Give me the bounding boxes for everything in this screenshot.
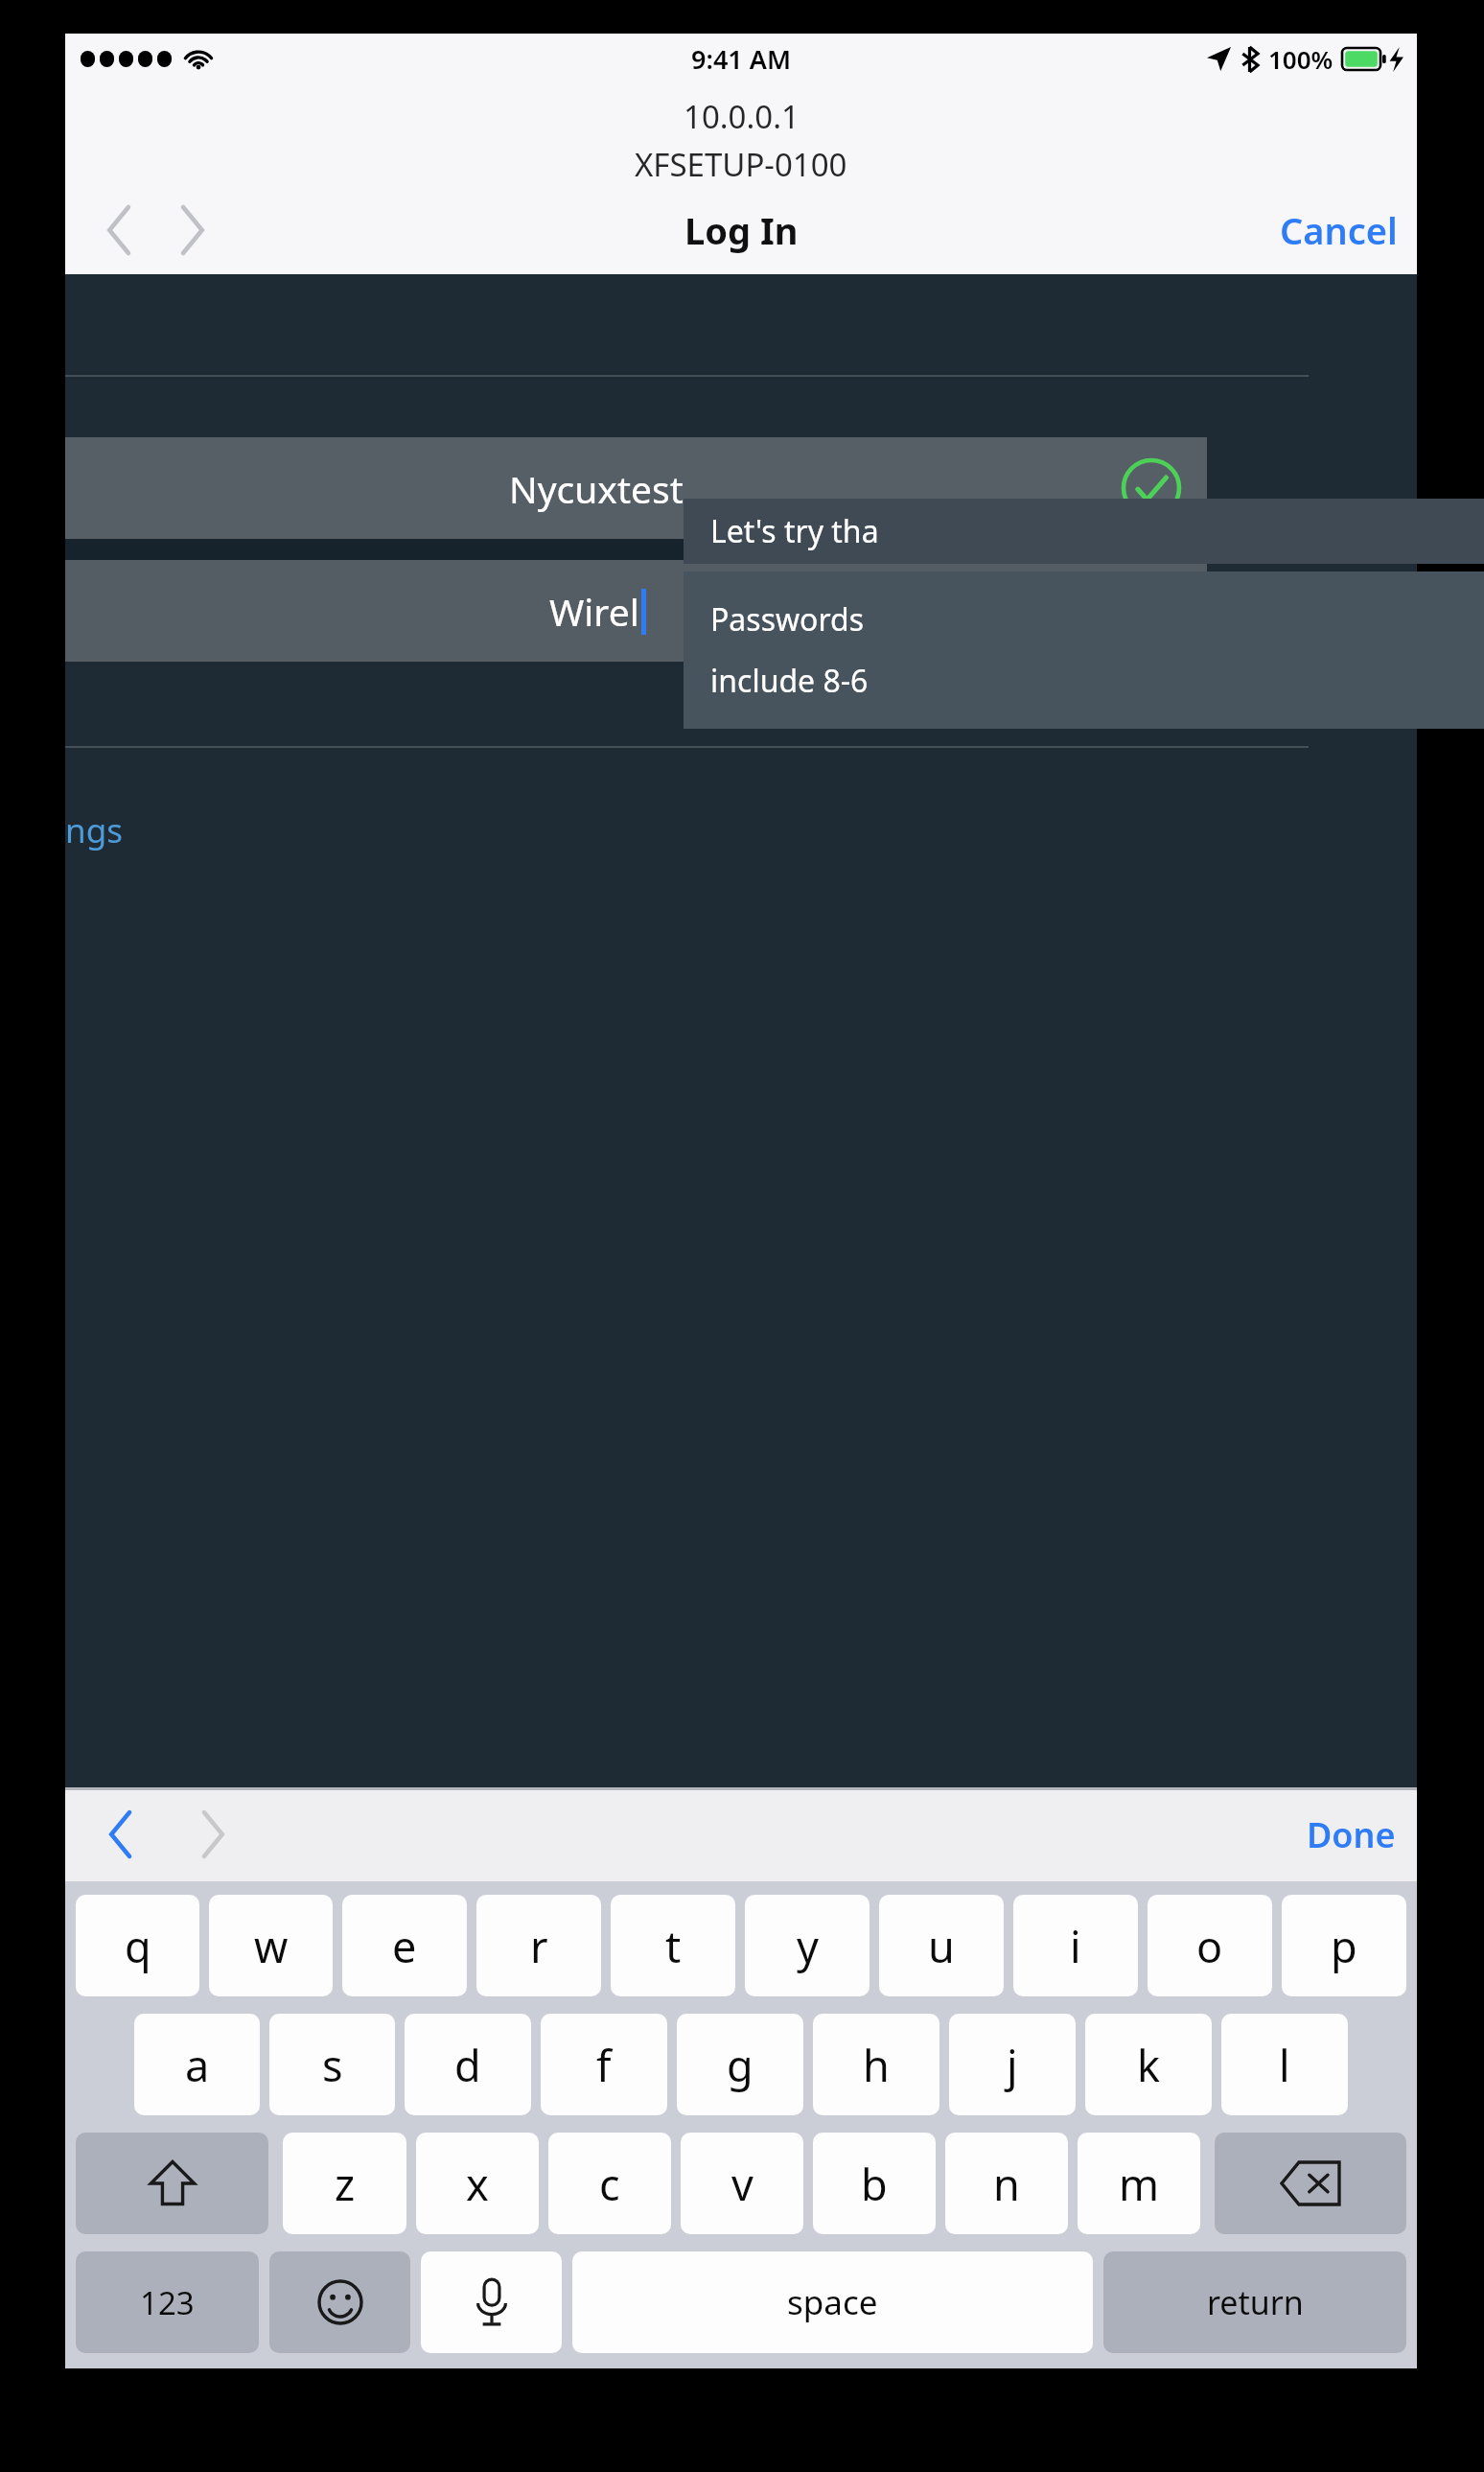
- button[interactable]: b: [813, 2133, 936, 2234]
- staticText: Cancel: [1280, 205, 1398, 255]
- staticText: w: [254, 1917, 289, 1975]
- button[interactable]: y: [745, 1895, 870, 1996]
- button[interactable]: Shift: [76, 2133, 268, 2234]
- button[interactable]: Emoji: [269, 2251, 410, 2353]
- button[interactable]: u: [879, 1895, 1004, 1996]
- button[interactable]: k: [1085, 2014, 1212, 2115]
- button[interactable]: Wirel: [65, 560, 1207, 662]
- staticText: f: [596, 2036, 612, 2094]
- button[interactable]: v: [681, 2133, 803, 2234]
- staticText: y: [797, 1917, 819, 1975]
- button[interactable]: Next field: [176, 1798, 249, 1871]
- staticText: 10.0.0.1: [684, 95, 800, 138]
- button[interactable]: o: [1148, 1895, 1272, 1996]
- staticText: ngs: [65, 807, 123, 853]
- staticText: q: [125, 1917, 151, 1975]
- button[interactable]: d: [405, 2014, 531, 2115]
- staticText: include 8-6: [710, 660, 869, 702]
- staticText: k: [1137, 2036, 1161, 2094]
- button[interactable]: a: [134, 2014, 260, 2115]
- button[interactable]: Numbers: [76, 2251, 259, 2353]
- button[interactable]: h: [813, 2014, 939, 2115]
- staticText: o: [1196, 1917, 1223, 1975]
- staticText: g: [727, 2036, 754, 2094]
- button[interactable]: Dictation: [421, 2251, 562, 2353]
- staticText: 123: [140, 2281, 195, 2324]
- button[interactable]: j: [949, 2014, 1076, 2115]
- button[interactable]: m: [1078, 2133, 1200, 2234]
- staticText: r: [530, 1917, 548, 1975]
- button[interactable]: Previous field: [84, 1798, 157, 1871]
- button[interactable]: Back: [82, 194, 155, 267]
- button[interactable]: r: [476, 1895, 601, 1996]
- button[interactable]: t: [611, 1895, 735, 1996]
- staticText: Wirel: [549, 586, 639, 637]
- staticText: i: [1070, 1917, 1081, 1975]
- staticText: b: [861, 2155, 888, 2213]
- staticText: n: [993, 2155, 1020, 2213]
- button[interactable]: Forward: [155, 194, 228, 267]
- staticText: x: [466, 2155, 489, 2213]
- staticText: space: [787, 2279, 878, 2325]
- staticText: e: [392, 1917, 417, 1975]
- button[interactable]: return: [1103, 2251, 1406, 2353]
- staticText: m: [1119, 2155, 1160, 2213]
- staticText: p: [1331, 1917, 1357, 1975]
- button[interactable]: n: [945, 2133, 1068, 2234]
- button[interactable]: g: [677, 2014, 803, 2115]
- staticText: c: [599, 2155, 620, 2213]
- button[interactable]: l: [1221, 2014, 1348, 2115]
- button[interactable]: x: [416, 2133, 539, 2234]
- staticText: l: [1279, 2036, 1290, 2094]
- button[interactable]: e: [342, 1895, 467, 1996]
- button[interactable]: space: [572, 2251, 1093, 2353]
- button[interactable]: Delete: [1215, 2133, 1406, 2234]
- button[interactable]: s: [269, 2014, 395, 2115]
- button[interactable]: f: [541, 2014, 667, 2115]
- staticText: Log In: [684, 205, 799, 255]
- staticText: u: [928, 1917, 955, 1975]
- button[interactable]: z: [283, 2133, 406, 2234]
- button[interactable]: c: [548, 2133, 671, 2234]
- staticText: h: [863, 2036, 890, 2094]
- staticText: v: [731, 2155, 754, 2213]
- staticText: t: [665, 1917, 682, 1975]
- button[interactable]: q: [76, 1895, 199, 1996]
- staticText: 100%: [1268, 42, 1333, 76]
- staticText: Passwords: [710, 598, 865, 641]
- staticText: Done: [1307, 1811, 1396, 1858]
- staticText: d: [454, 2036, 481, 2094]
- button[interactable]: i: [1013, 1895, 1138, 1996]
- staticText: s: [322, 2036, 343, 2094]
- staticText: return: [1207, 2280, 1304, 2324]
- staticText: 9:41 AM: [691, 41, 792, 77]
- staticText: z: [335, 2155, 356, 2213]
- button[interactable]: p: [1282, 1895, 1406, 1996]
- button[interactable]: Nycuxtest: [65, 437, 1207, 539]
- staticText: Let's try tha: [710, 510, 879, 552]
- staticText: Nycuxtest: [509, 463, 684, 514]
- staticText: a: [185, 2036, 210, 2094]
- staticText: XFSETUP-0100: [635, 143, 847, 186]
- button[interactable]: w: [209, 1895, 333, 1996]
- button[interactable]: Cancel: [1261, 190, 1417, 270]
- button[interactable]: Done: [1286, 1798, 1417, 1872]
- staticText: j: [1007, 2036, 1018, 2094]
